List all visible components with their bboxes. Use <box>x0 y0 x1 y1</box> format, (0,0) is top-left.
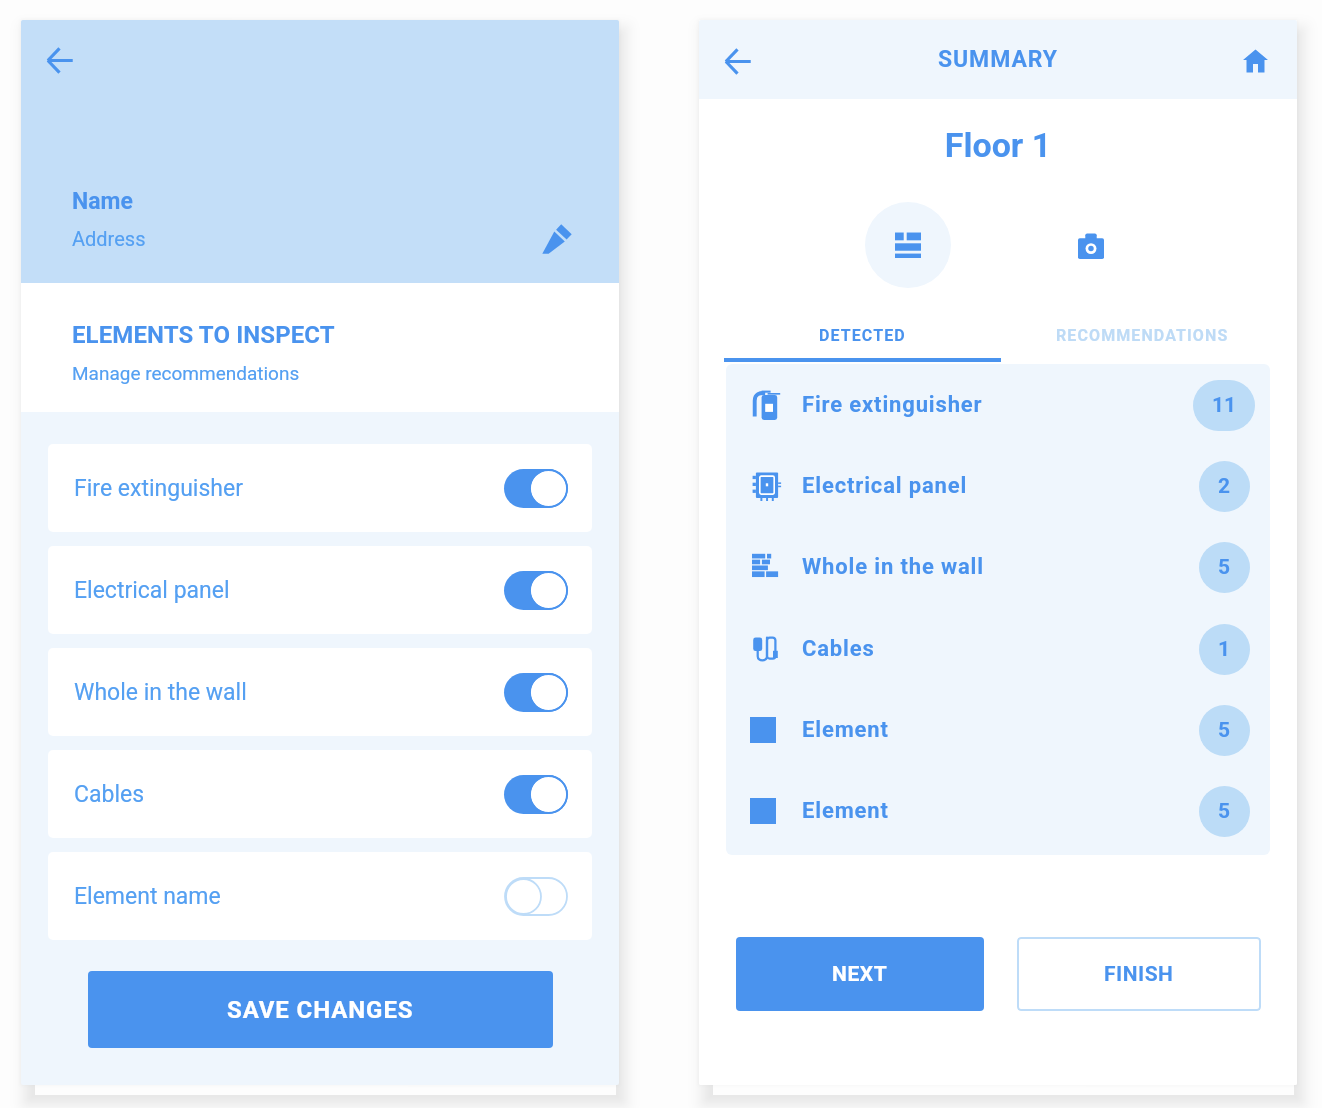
button[interactable]: SAVE CHANGES <box>88 971 553 1048</box>
staticText: DETECTED <box>819 326 906 345</box>
button[interactable]: Whole in the wall <box>48 648 592 736</box>
button[interactable]: Cables <box>726 608 1270 689</box>
button[interactable]: Electrical panel <box>726 445 1270 526</box>
button[interactable]: Edit <box>533 215 581 263</box>
button[interactable]: Back <box>33 34 85 86</box>
staticText: ELEMENTS TO INSPECT <box>72 321 335 349</box>
staticText: Fire extinguisher <box>802 392 983 418</box>
button[interactable]: Element <box>726 770 1270 851</box>
staticText: Address <box>72 227 146 250</box>
staticText: Cables <box>74 781 145 808</box>
button[interactable]: Element <box>726 689 1270 770</box>
button[interactable]: Cables <box>48 750 592 838</box>
button[interactable]: Fire extinguisher <box>726 364 1270 445</box>
button[interactable]: Back <box>711 35 763 87</box>
staticText: Cables <box>802 636 875 662</box>
staticText: Element <box>802 717 889 743</box>
staticText: Floor 1 <box>699 125 1297 165</box>
staticText: Name <box>72 188 133 215</box>
button[interactable]: Element name <box>48 852 592 940</box>
button[interactable]: List view <box>865 202 951 288</box>
staticText: Manage recommendations <box>72 362 300 384</box>
staticText: 11 <box>1212 393 1237 418</box>
staticText: Electrical panel <box>802 473 968 499</box>
button[interactable]: Electrical panel <box>48 546 592 634</box>
staticText: SAVE CHANGES <box>227 996 414 1024</box>
button[interactable]: Fire extinguisher <box>48 444 592 532</box>
staticText: 1 <box>1218 637 1231 662</box>
staticText: FINISH <box>1104 962 1174 987</box>
button[interactable]: Home <box>1229 35 1281 87</box>
staticText: SUMMARY <box>938 46 1058 73</box>
button[interactable]: NEXT <box>736 937 984 1011</box>
staticText: NEXT <box>832 962 888 987</box>
button[interactable]: FINISH <box>1017 937 1261 1011</box>
staticText: Whole in the wall <box>74 679 247 706</box>
staticText: Whole in the wall <box>802 554 984 580</box>
staticText: Element name <box>74 883 221 910</box>
button[interactable]: RECOMMENDATIONS <box>1001 326 1283 362</box>
staticText: Fire extinguisher <box>74 475 243 502</box>
staticText: 5 <box>1218 799 1231 824</box>
button[interactable]: Camera <box>1048 203 1134 289</box>
staticText: RECOMMENDATIONS <box>1056 326 1229 345</box>
staticText: 5 <box>1218 555 1231 580</box>
button[interactable]: Whole in the wall <box>726 526 1270 607</box>
button[interactable]: DETECTED <box>724 326 1001 362</box>
staticText: 5 <box>1218 718 1231 743</box>
staticText: Electrical panel <box>74 577 230 604</box>
staticText: Element <box>802 798 889 824</box>
staticText: 2 <box>1218 474 1231 499</box>
